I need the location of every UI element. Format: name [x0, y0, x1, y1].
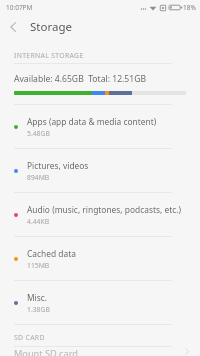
- button[interactable]: Pictures, videos: [0, 149, 200, 192]
- staticText: 18%: [183, 3, 196, 12]
- staticText: 894MB: [27, 173, 50, 182]
- staticText: 4.44KB: [27, 217, 50, 226]
- staticText: Mount SD card: [14, 347, 78, 356]
- staticText: Cached data: [27, 248, 76, 259]
- staticText: Available: 4.65GB Total: 12.51GB: [14, 73, 147, 85]
- staticText: Pictures, videos: [27, 160, 89, 171]
- staticText: Audio (music, ringtones, podcasts, etc.): [27, 204, 181, 215]
- staticText: INTERNAL STORAGE: [14, 51, 84, 60]
- button[interactable]: Mount SD card: [0, 347, 200, 356]
- staticText: 1.38GB: [27, 305, 50, 314]
- button[interactable]: Cached data: [0, 237, 200, 280]
- button[interactable]: Back: [0, 14, 26, 40]
- staticText: Misc.: [27, 292, 48, 303]
- button[interactable]: Misc.: [0, 281, 200, 324]
- staticText: SD CARD: [14, 333, 45, 342]
- button[interactable]: Apps (app data & media content): [0, 105, 200, 148]
- button[interactable]: Audio (music, ringtones, podcasts, etc.): [0, 193, 200, 236]
- staticText: 115MB: [27, 261, 50, 270]
- staticText: Apps (app data & media content): [27, 116, 157, 127]
- staticText: 5.48GB: [27, 129, 50, 138]
- staticText: 10:07PM: [6, 3, 33, 12]
- staticText: Storage: [30, 19, 72, 35]
